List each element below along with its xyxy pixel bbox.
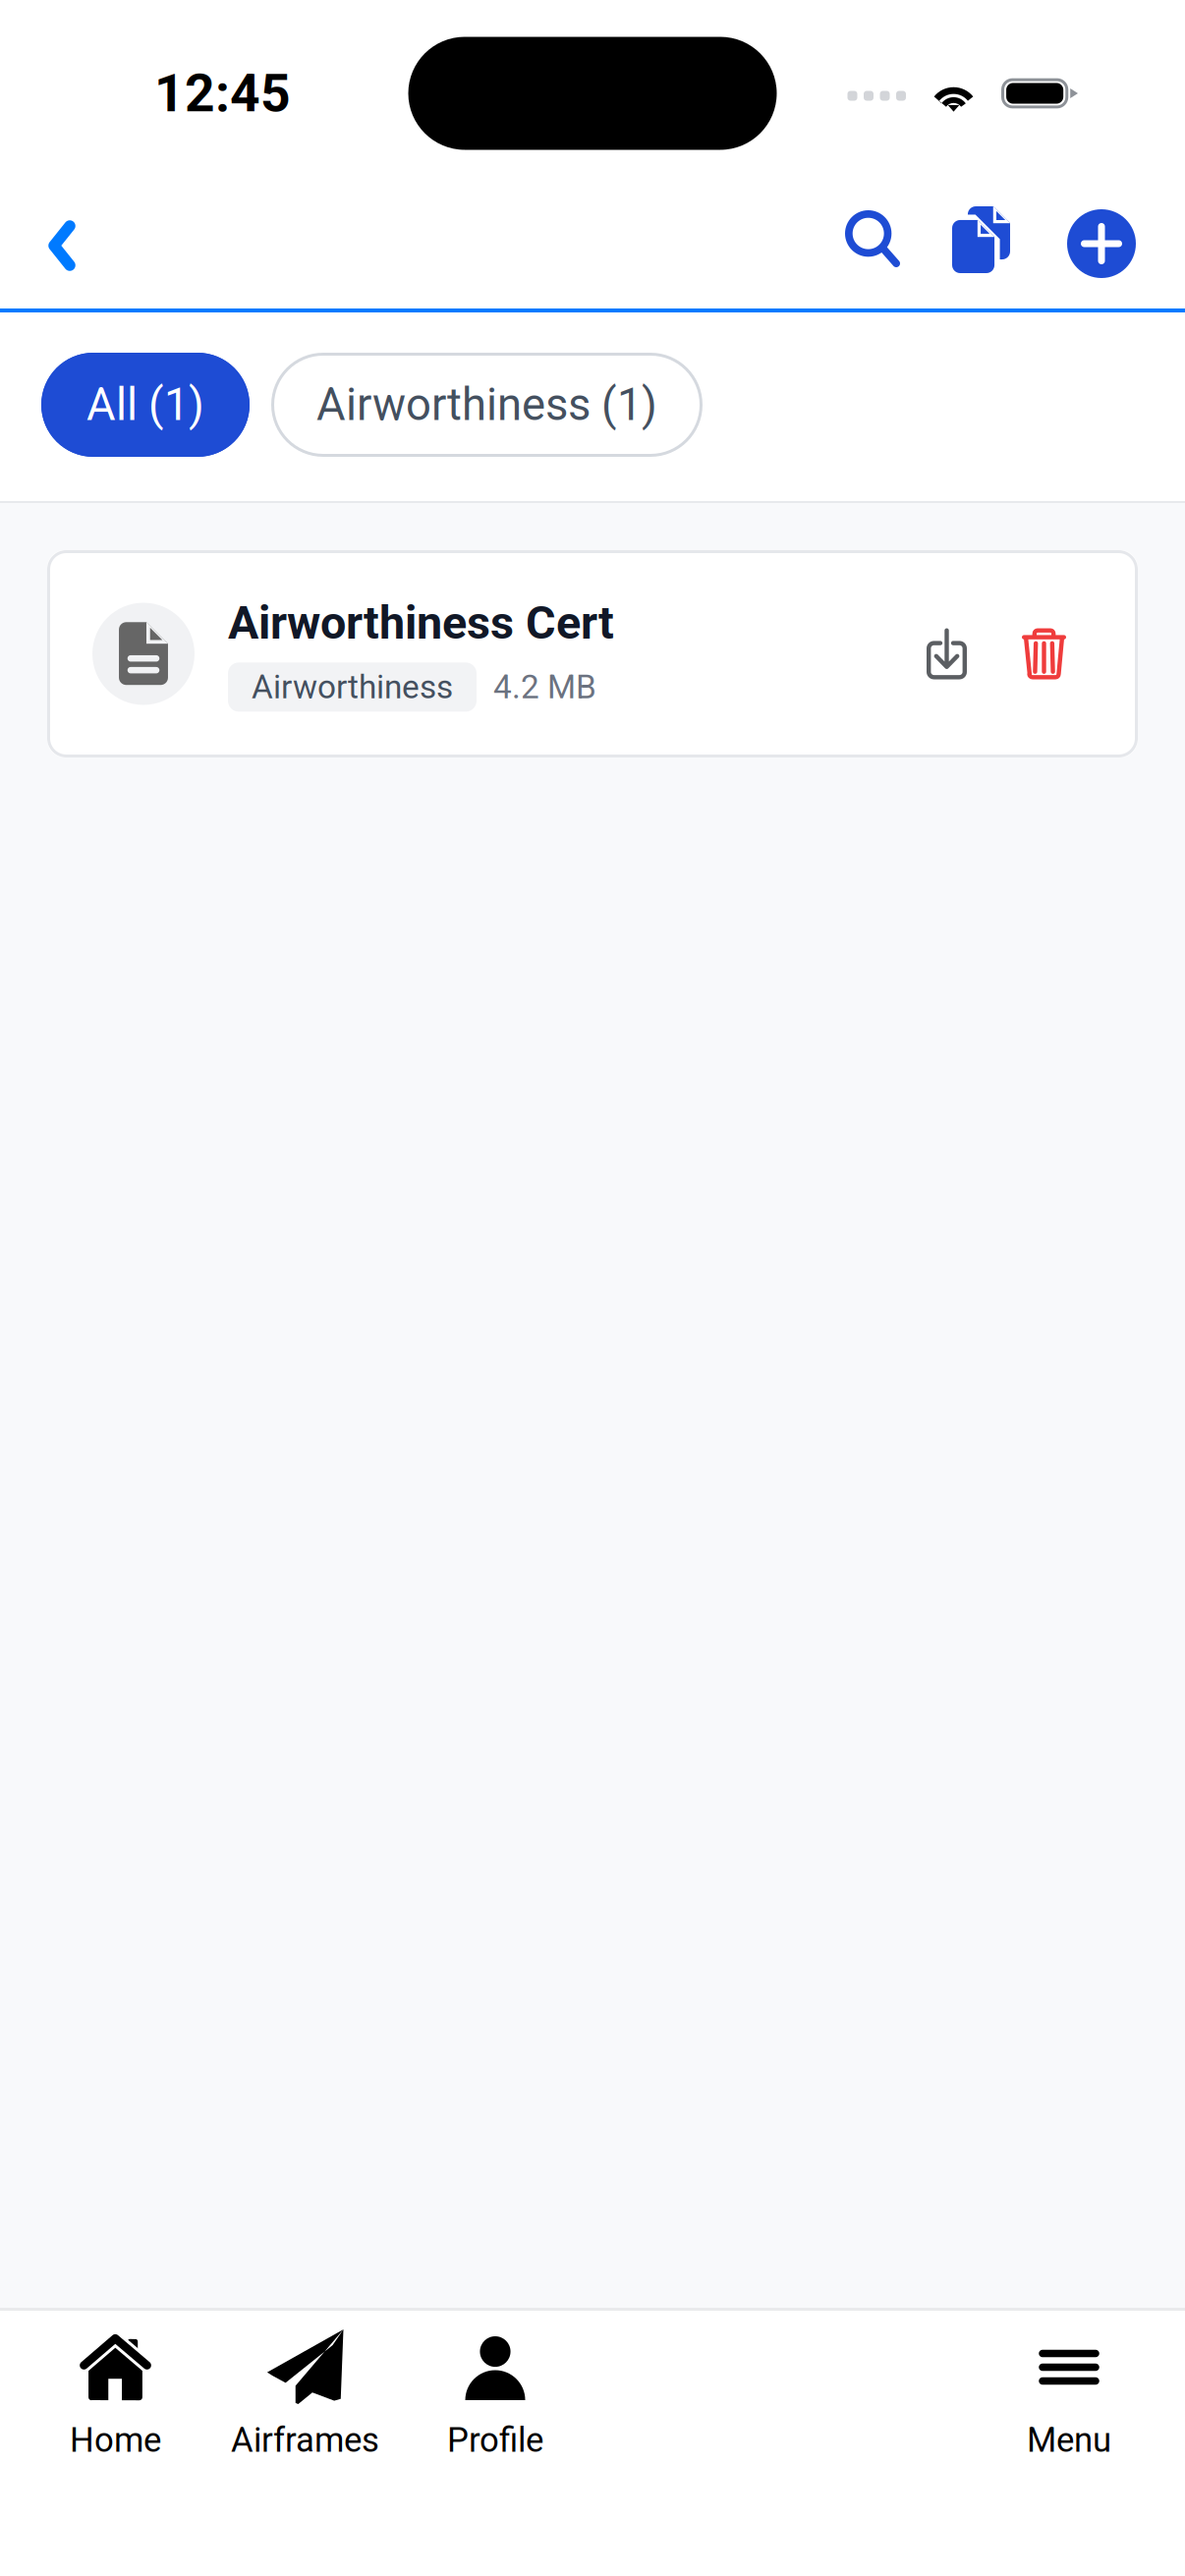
button[interactable]: Search <box>822 187 929 308</box>
button[interactable]: Documents <box>929 187 1044 308</box>
staticText: 4.2 MB <box>493 668 596 706</box>
staticText: Airframes <box>231 2420 379 2460</box>
staticText: Home <box>70 2420 161 2460</box>
staticText: All (1) <box>86 379 204 431</box>
button[interactable]: Airworthiness Cert <box>47 550 1138 757</box>
button[interactable]: Airframes <box>207 2311 403 2463</box>
button[interactable]: Add <box>1044 187 1185 308</box>
button[interactable]: Back <box>0 187 112 308</box>
staticText: Airworthiness (1) <box>316 379 657 431</box>
staticText: Profile <box>447 2420 543 2460</box>
staticText: Airworthiness Cert <box>228 596 614 650</box>
button[interactable]: Delete <box>998 595 1090 713</box>
button[interactable]: Download <box>895 595 998 713</box>
button[interactable]: Airworthiness (1) <box>271 353 703 457</box>
staticText: Menu <box>1027 2420 1111 2460</box>
button[interactable]: Home <box>46 2311 185 2463</box>
button[interactable]: All (1) <box>41 353 250 457</box>
staticText: Airworthiness <box>252 668 453 706</box>
staticText: 12:45 <box>154 63 291 124</box>
button[interactable]: Profile <box>423 2311 567 2463</box>
button[interactable]: Menu <box>1003 2311 1135 2463</box>
